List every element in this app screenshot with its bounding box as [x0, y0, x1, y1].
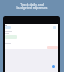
button[interactable]: Search [5, 26, 11, 29]
staticText: Track daily and budgeted expenses [0, 2, 64, 10]
button[interactable]: Add expense [52, 65, 55, 68]
button[interactable]: Profile [53, 26, 56, 29]
